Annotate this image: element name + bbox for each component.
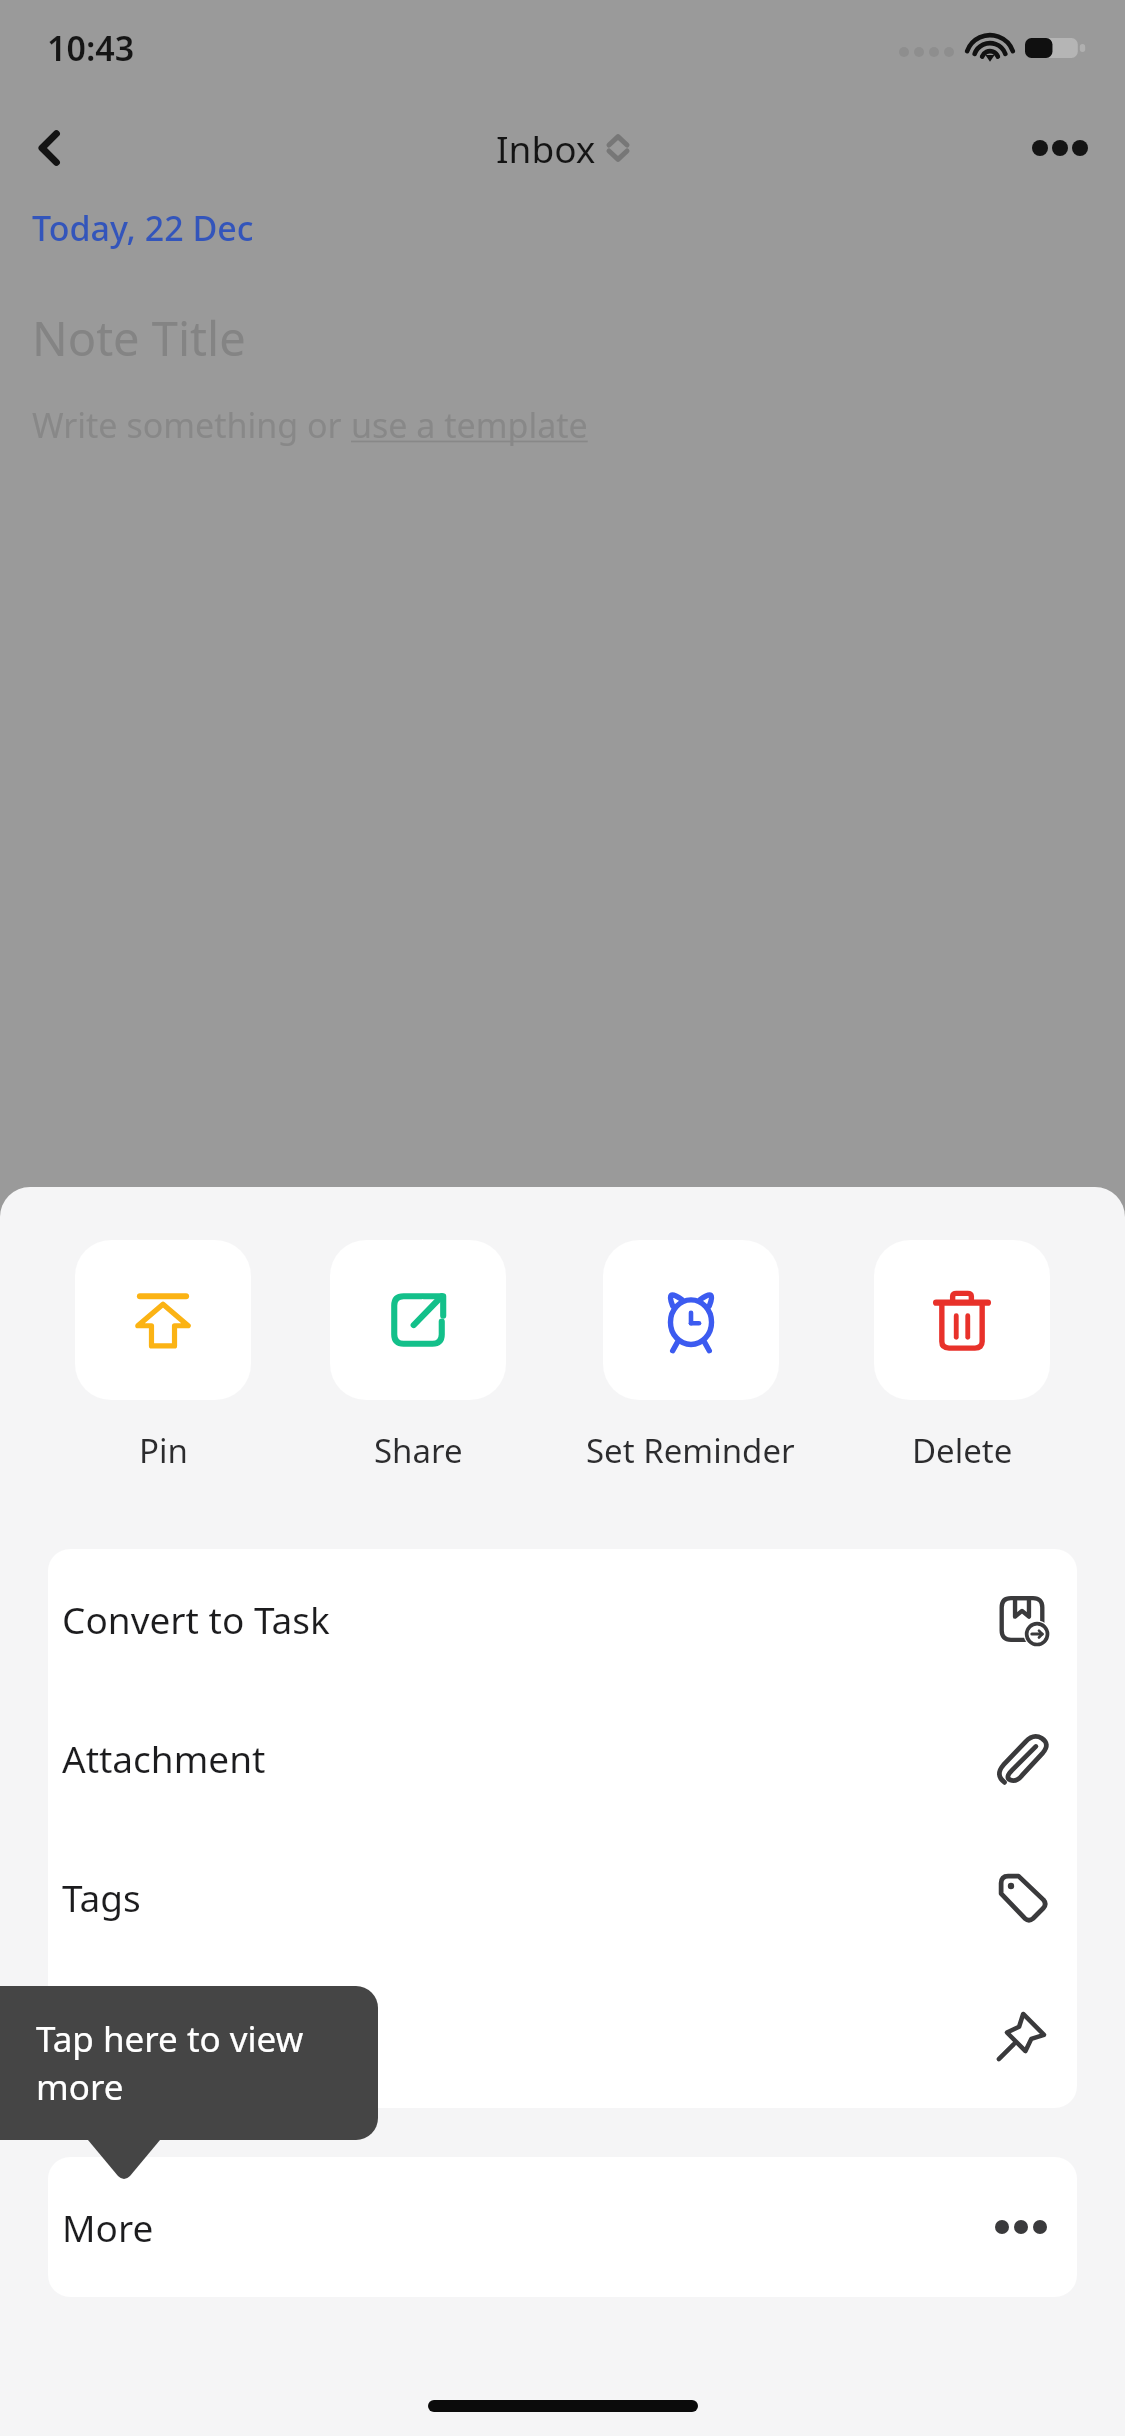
button[interactable]: Inbox — [496, 123, 629, 173]
button[interactable]: Tap here to view more — [0, 1986, 378, 2140]
staticText: Tags — [62, 1872, 141, 1922]
staticText: Share — [374, 1428, 463, 1473]
button[interactable]: Share — [326, 1240, 510, 1473]
staticText: 10:43 — [47, 25, 135, 71]
staticText: Set Reminder — [586, 1428, 795, 1473]
button[interactable]: Add to Activity — [48, 1966, 1077, 2105]
staticText: Pin — [139, 1428, 188, 1473]
button[interactable]: Convert to Task — [48, 1549, 1077, 1688]
staticText: Note Title — [32, 306, 246, 370]
button[interactable]: More options — [1025, 113, 1095, 183]
staticText: Inbox — [496, 123, 596, 173]
button[interactable]: More — [48, 2157, 1077, 2297]
staticText: Write something or — [32, 402, 351, 448]
button[interactable]: Attachment — [48, 1688, 1077, 1827]
button[interactable]: Delete — [870, 1240, 1054, 1473]
button[interactable]: Tags — [48, 1827, 1077, 1966]
button[interactable]: Pin — [71, 1240, 255, 1473]
staticText: Delete — [912, 1428, 1013, 1473]
staticText: use a template — [351, 402, 588, 448]
staticText: Tap here to view more — [36, 2015, 378, 2111]
staticText: Convert to Task — [62, 1594, 330, 1644]
staticText: Today, 22 Dec — [32, 205, 254, 251]
button[interactable]: Set Reminder — [582, 1240, 799, 1473]
button[interactable]: Back — [18, 116, 82, 180]
staticText: More — [62, 2202, 154, 2252]
staticText: Add to Activity — [62, 2011, 312, 2061]
staticText: Attachment — [62, 1733, 266, 1783]
